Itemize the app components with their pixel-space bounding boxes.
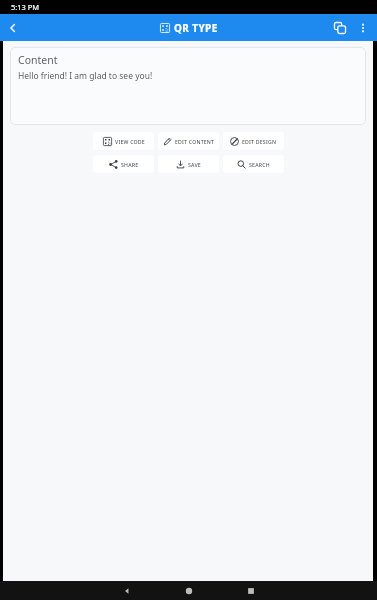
button[interactable]: Back [114, 581, 140, 600]
button[interactable]: Content [10, 47, 366, 125]
staticText: SAVE [188, 161, 201, 168]
button[interactable]: EDIT CONTENT [158, 132, 219, 150]
staticText: SHARE [121, 161, 139, 168]
button[interactable]: Back [0, 15, 26, 41]
button[interactable]: Duplicate [328, 16, 352, 40]
button[interactable]: More options [352, 17, 374, 39]
button[interactable]: VIEW CODE [93, 132, 154, 150]
button[interactable]: Home [176, 581, 202, 600]
button[interactable]: SHARE [93, 155, 154, 173]
staticText: 5:13 PM [11, 2, 40, 12]
button[interactable]: SEARCH [223, 155, 284, 173]
staticText: SEARCH [249, 161, 270, 168]
staticText: Content [18, 53, 58, 67]
staticText: EDIT CONTENT [175, 138, 215, 145]
staticText: QR TYPE [174, 21, 218, 35]
staticText: Hello friend! I am glad to see you! [18, 70, 153, 82]
staticText: EDIT DESIGN [242, 138, 277, 145]
button[interactable]: SAVE [158, 155, 219, 173]
staticText: VIEW CODE [115, 138, 145, 145]
button[interactable]: Recent apps [238, 581, 264, 600]
button[interactable]: EDIT DESIGN [223, 132, 284, 150]
